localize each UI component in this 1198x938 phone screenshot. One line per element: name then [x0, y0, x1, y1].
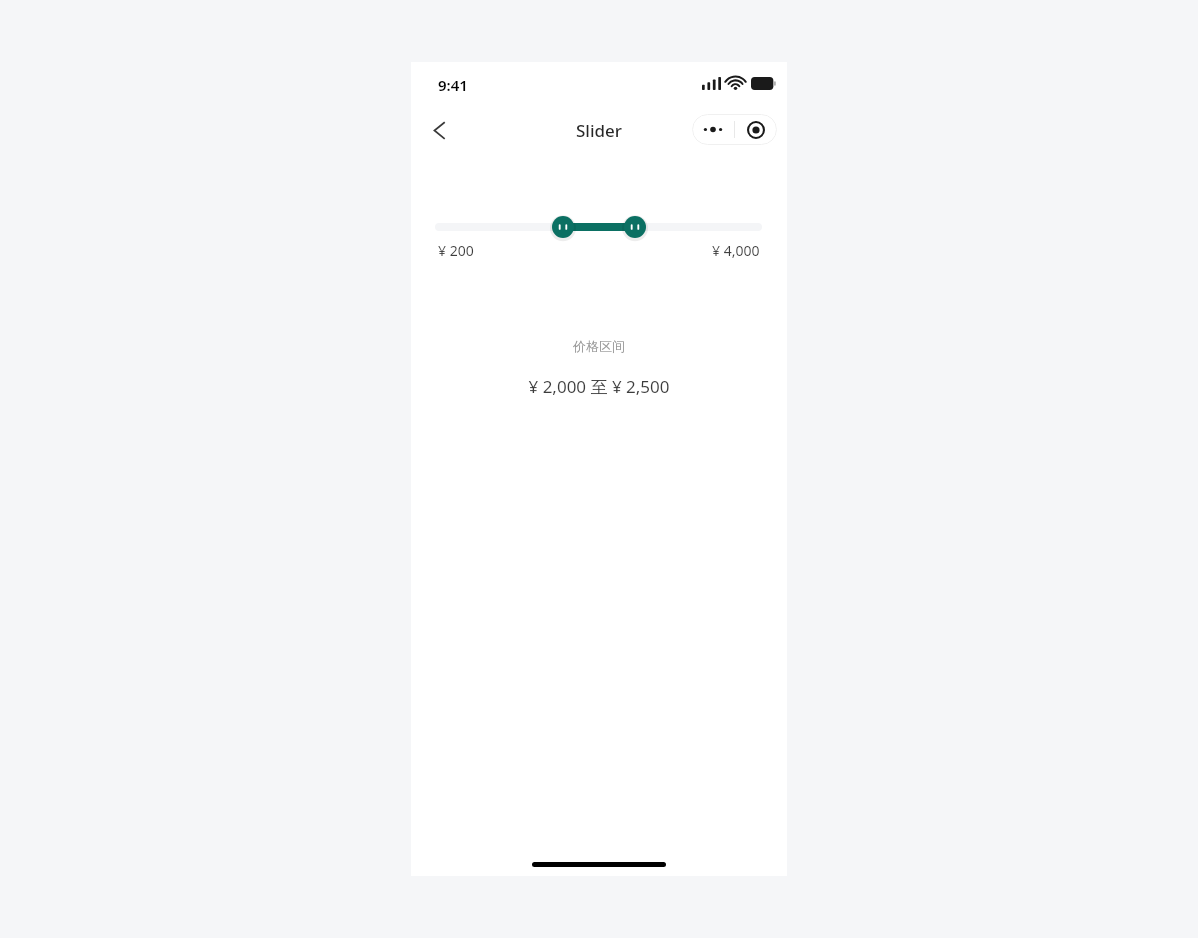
button[interactable]: More options [692, 114, 734, 145]
staticText: 价格区间 [573, 338, 625, 354]
staticText: ¥ 2,000 至 ¥ 2,500 [528, 375, 670, 398]
button[interactable]: Back [421, 112, 457, 148]
button[interactable]: Minimum price handle [550, 214, 576, 240]
staticText: Slider [411, 119, 787, 142]
button[interactable]: Close [735, 114, 777, 145]
staticText: 9:41 [438, 75, 468, 95]
staticText: ¥ 4,000 [712, 241, 760, 260]
button[interactable]: Maximum price handle [622, 214, 648, 240]
staticText: ¥ 200 [438, 241, 474, 260]
